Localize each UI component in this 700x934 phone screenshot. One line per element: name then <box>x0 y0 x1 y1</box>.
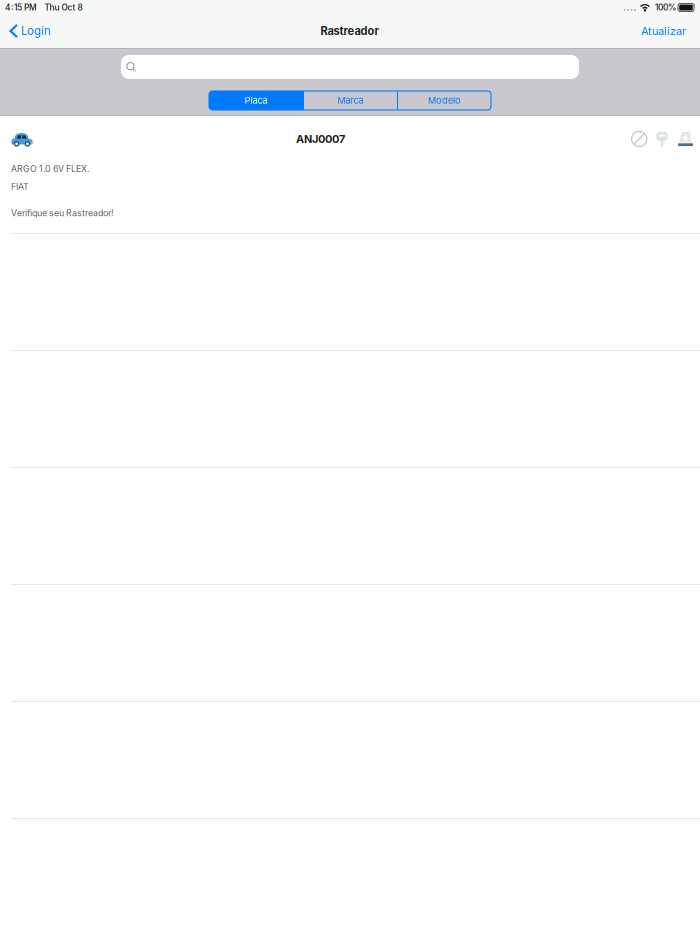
staticText: Modelo <box>428 95 461 106</box>
button[interactable]: Bloquear veículo <box>629 129 649 149</box>
staticText: Rastreador <box>320 24 379 38</box>
staticText: Placa <box>244 95 267 106</box>
button[interactable]: Placa <box>209 91 303 110</box>
staticText: Atualizar <box>641 24 686 38</box>
button[interactable]: Modelo <box>398 91 491 110</box>
staticText: Login <box>21 24 51 38</box>
button[interactable]: ARGO 1.0 6V FLEX. <box>11 147 695 226</box>
staticText: 100% <box>655 2 676 13</box>
staticText: Marca <box>337 95 363 106</box>
staticText: 4:15 PM <box>5 2 37 13</box>
button[interactable]: Destravar veículo <box>654 129 670 149</box>
button[interactable]: Atualizar <box>631 16 700 46</box>
staticText: FIAT <box>11 181 29 192</box>
staticText: Thu Oct 8 <box>44 2 82 13</box>
button[interactable]: Acionar sirene <box>676 129 695 149</box>
staticText: Verifique seu Rastreador! <box>11 208 114 218</box>
staticText: ARGO 1.0 6V FLEX. <box>11 163 90 174</box>
button[interactable]: Login <box>0 16 59 46</box>
staticText: ANJ0007 <box>296 132 345 146</box>
button[interactable]: Marca <box>304 91 397 110</box>
